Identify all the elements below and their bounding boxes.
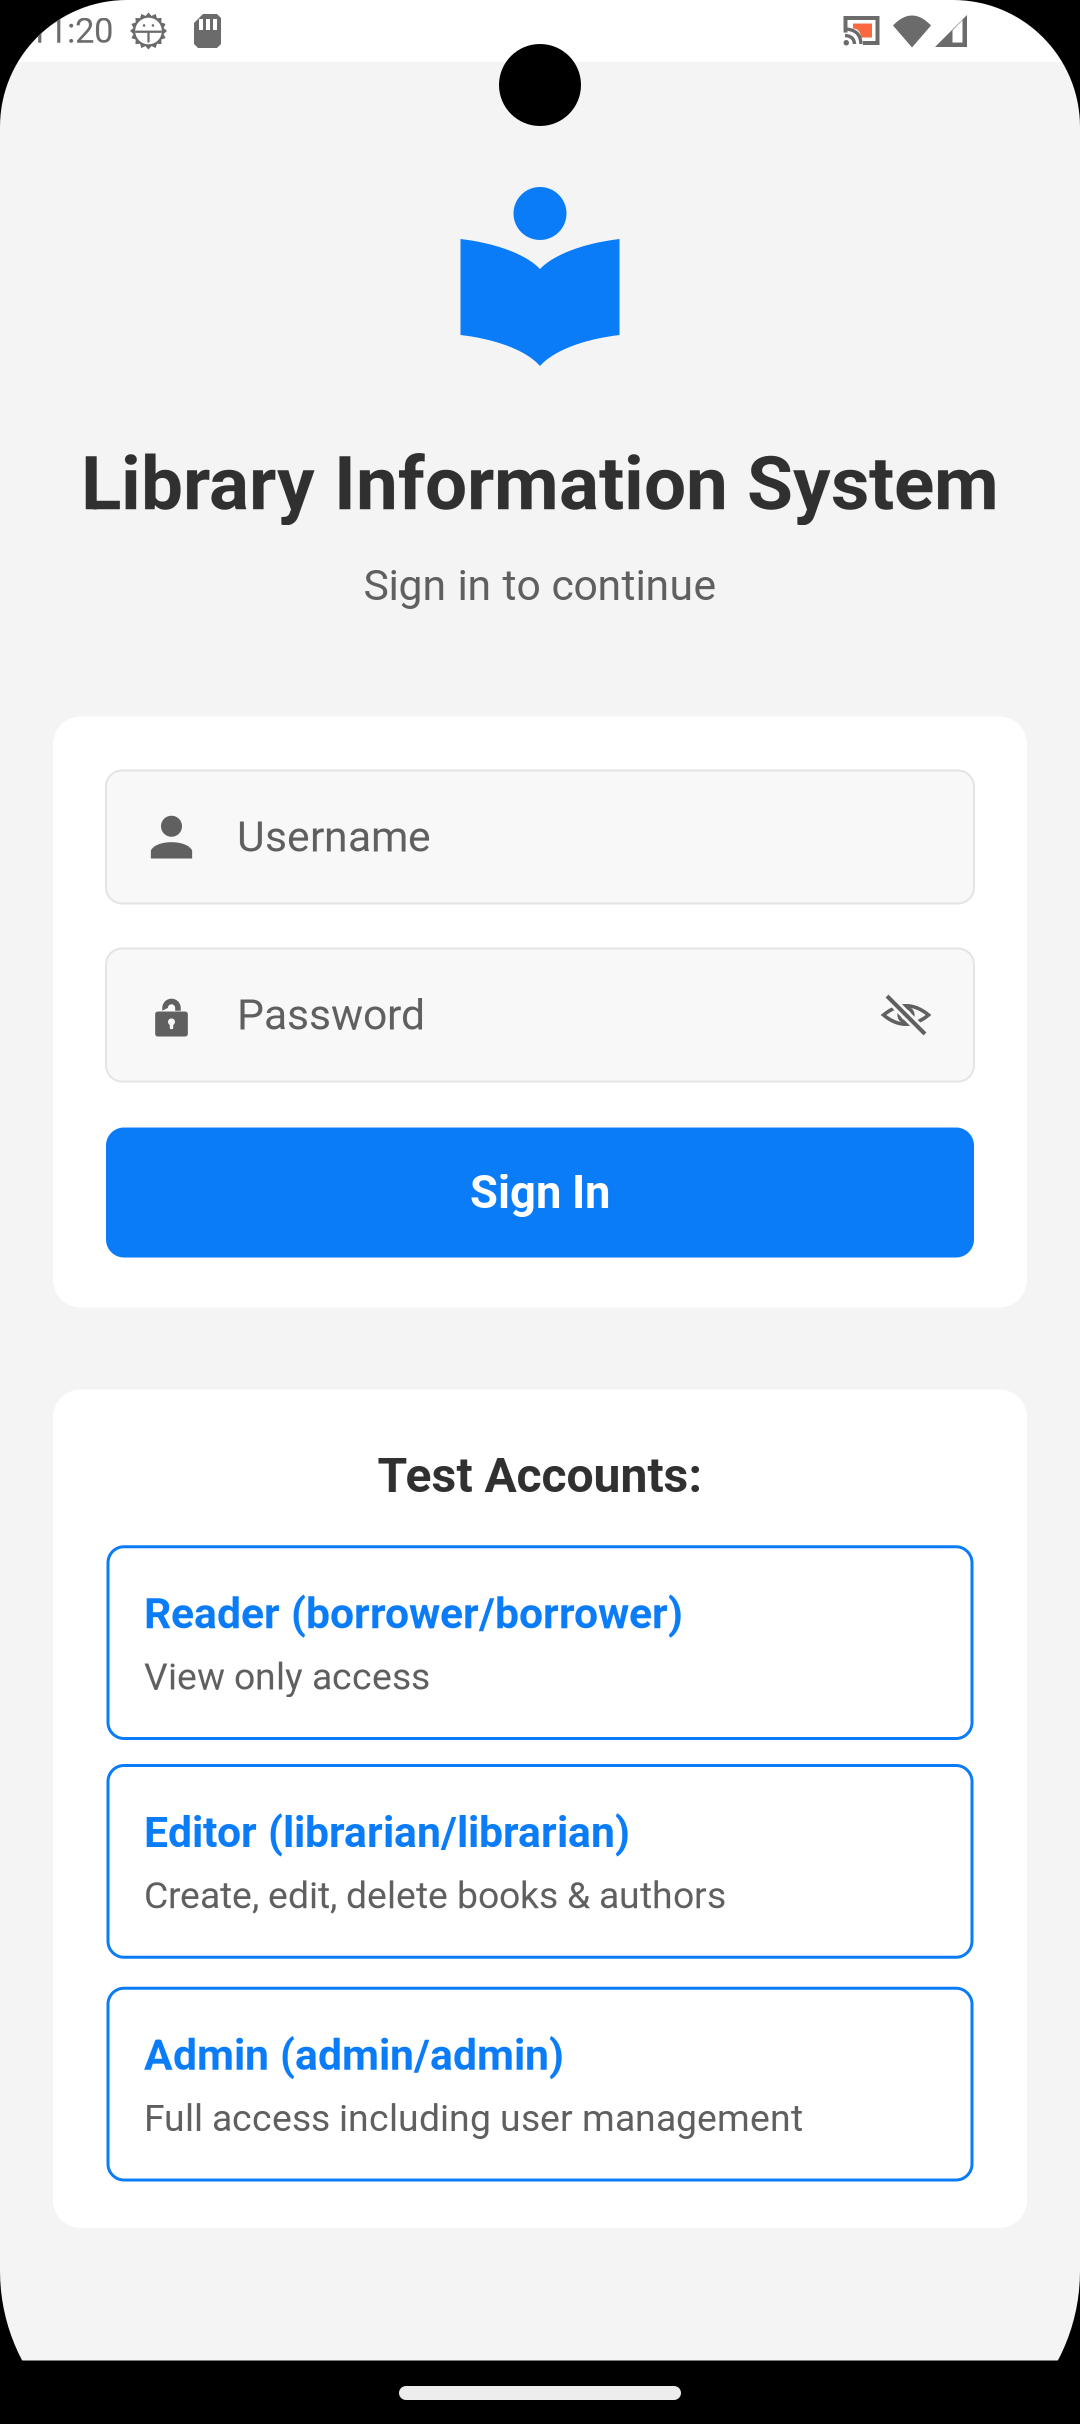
staticText: Sign In [470,1166,610,1219]
staticText: Test Accounts: [377,1447,702,1504]
button[interactable]: Sign In [106,1127,974,1257]
staticText: Admin (admin/admin) [144,2030,564,2080]
staticText: Library Information System [81,440,999,527]
staticText: Reader (borrower/borrower) [144,1589,683,1639]
staticText: Editor (librarian/librarian) [144,1807,630,1857]
staticText: View only access [144,1655,430,1698]
button[interactable]: Reader (borrower/borrower) [108,1547,972,1739]
staticText: Sign in to continue [363,560,716,610]
staticText: Username [237,812,431,862]
staticText: Password [237,990,425,1040]
button[interactable]: Editor (librarian/librarian) [108,1765,972,1957]
staticText: Create, edit, delete books & authors [144,1873,726,1917]
button[interactable]: Admin (admin/admin) [108,1988,972,2180]
staticText: 11:20 [29,11,113,51]
staticText: Full access including user management [144,2096,803,2140]
